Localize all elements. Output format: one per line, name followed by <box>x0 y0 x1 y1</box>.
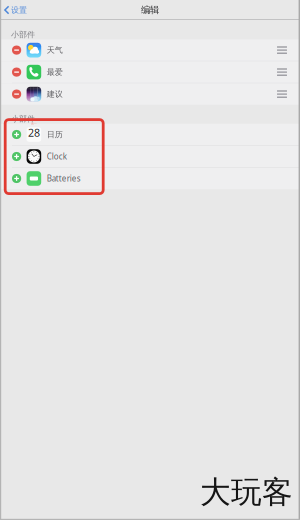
button[interactable]: 天气 <box>0 39 300 61</box>
staticText: 设置 <box>11 5 27 15</box>
staticText: 编辑 <box>141 4 159 16</box>
button[interactable]: 最爱 <box>0 61 300 83</box>
staticText: 28 <box>28 125 40 140</box>
staticText: 周一 <box>31 122 37 126</box>
staticText: 天气 <box>47 45 63 55</box>
button[interactable]: 周一 <box>0 124 300 146</box>
staticText: 日历 <box>47 130 63 139</box>
button[interactable]: Batteries <box>0 168 300 189</box>
staticText: 大玩客 <box>200 473 293 511</box>
staticText: 最爱 <box>47 67 63 77</box>
button[interactable]: Clock <box>0 146 300 168</box>
button[interactable]: 设置 <box>0 3 27 17</box>
staticText: 建议 <box>47 89 63 99</box>
button[interactable]: 建议 <box>0 83 300 105</box>
staticText: 小部件 <box>11 30 35 39</box>
staticText: 小部件 <box>11 114 35 124</box>
staticText: Clock <box>47 151 67 162</box>
staticText: Batteries <box>47 173 81 184</box>
